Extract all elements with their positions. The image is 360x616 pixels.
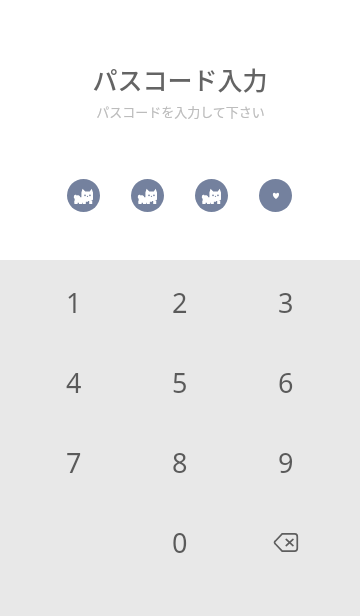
button[interactable]: 4: [21, 342, 127, 422]
staticText: 5: [172, 364, 188, 401]
other: Backspace: [274, 533, 298, 552]
staticText: 8: [172, 444, 188, 481]
staticText: 6: [278, 364, 294, 401]
button[interactable]: 2: [127, 262, 233, 342]
button[interactable]: 9: [233, 422, 339, 502]
button[interactable]: 0: [127, 502, 233, 582]
staticText: 3: [278, 284, 294, 321]
staticText: 1: [66, 284, 82, 321]
button[interactable]: 5: [127, 342, 233, 422]
staticText: 7: [66, 444, 82, 481]
button[interactable]: 1: [21, 262, 127, 342]
staticText: パスコードを入力して下さい: [96, 102, 265, 121]
staticText: 0: [172, 524, 188, 561]
staticText: パスコード入力: [92, 61, 268, 97]
button[interactable]: Backspace: [233, 502, 339, 582]
staticText: 9: [278, 444, 294, 481]
button[interactable]: 8: [127, 422, 233, 502]
staticText: 2: [172, 284, 188, 321]
button[interactable]: 6: [233, 342, 339, 422]
button[interactable]: 7: [21, 422, 127, 502]
button[interactable]: 3: [233, 262, 339, 342]
staticText: 4: [66, 364, 82, 401]
